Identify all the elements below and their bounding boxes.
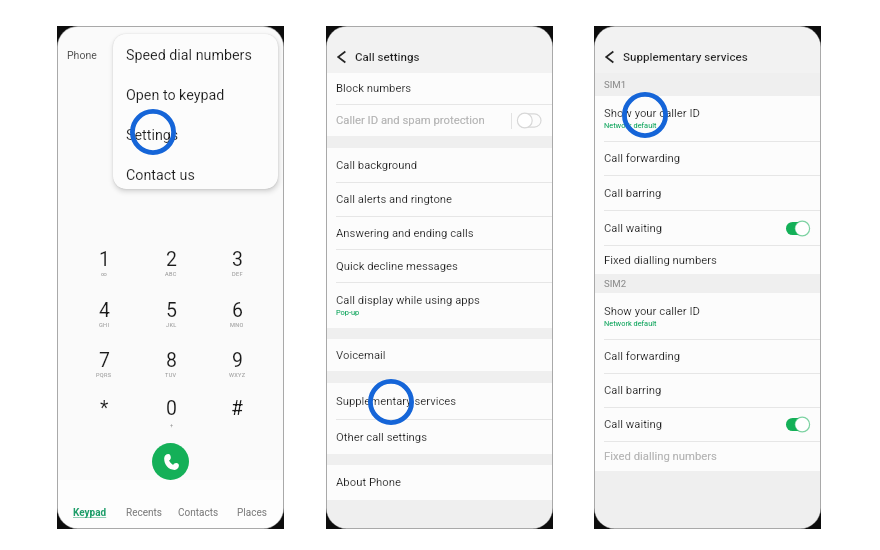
button[interactable]: Keypad <box>63 480 117 528</box>
staticText: 1 <box>99 248 110 271</box>
button[interactable]: Call alerts and ringtone <box>327 183 552 216</box>
button[interactable]: Speed dial numbers <box>113 43 278 68</box>
button[interactable]: Places <box>225 480 279 528</box>
button[interactable]: Call waiting <box>595 211 820 245</box>
staticText: Settings <box>126 127 179 144</box>
staticText: 2 <box>166 248 177 271</box>
staticText: Network default <box>604 319 657 328</box>
button[interactable]: Call barring <box>595 374 820 407</box>
staticText: Speed dial numbers <box>126 47 252 64</box>
staticText: WXYZ <box>229 372 246 379</box>
staticText: PQRS <box>96 372 112 379</box>
button[interactable]: Fixed dialling numbers <box>595 246 820 274</box>
button[interactable]: 8 <box>143 349 199 399</box>
button[interactable]: Show your caller ID <box>595 96 820 141</box>
staticText: Voicemail <box>336 349 386 362</box>
button[interactable]: Call barring <box>595 176 820 210</box>
button[interactable]: Show your caller ID <box>595 293 820 339</box>
staticText: * <box>100 397 109 420</box>
button[interactable]: Contact us <box>113 163 278 188</box>
button[interactable]: Block numbers <box>327 73 552 104</box>
staticText: Call settings <box>355 50 420 64</box>
staticText: JKL <box>166 322 177 329</box>
staticText: Call barring <box>604 384 662 397</box>
button[interactable]: 2 <box>143 248 199 298</box>
button[interactable]: Supplementary services <box>327 383 552 419</box>
button[interactable]: Voicemail <box>327 339 552 371</box>
button[interactable]: Call forwarding <box>595 142 820 175</box>
button[interactable]: Contacts <box>171 480 225 528</box>
staticText: Keypad <box>73 507 107 519</box>
button[interactable]: Call waiting <box>595 408 820 441</box>
staticText: Block numbers <box>336 82 412 95</box>
staticText: ∞ <box>101 271 108 278</box>
staticText: Supplementary services <box>623 50 748 64</box>
button[interactable]: # <box>209 397 265 447</box>
staticText: 3 <box>232 248 243 271</box>
staticText: Supplementary services <box>336 395 457 408</box>
staticText: Contacts <box>178 507 219 519</box>
button[interactable]: Caller ID and spam protection <box>327 105 552 136</box>
button[interactable]: 7 <box>76 349 132 399</box>
button[interactable]: Toggle <box>518 113 541 128</box>
staticText: Call waiting <box>604 418 663 431</box>
button[interactable]: Call display while using apps <box>327 283 552 328</box>
staticText: 7 <box>99 349 110 372</box>
button[interactable]: Back <box>334 49 350 65</box>
button[interactable]: Quick decline messages <box>327 250 552 282</box>
button[interactable]: Recents <box>117 480 171 528</box>
staticText: Call display while using apps <box>336 294 480 307</box>
staticText: Call waiting <box>604 222 663 235</box>
staticText: Answering and ending calls <box>336 227 474 240</box>
staticText: Phone <box>67 49 97 61</box>
staticText: Call forwarding <box>604 350 681 363</box>
button[interactable]: Answering and ending calls <box>327 217 552 249</box>
button[interactable]: 0 <box>143 397 199 447</box>
staticText: Show your caller ID <box>604 107 700 120</box>
staticText: Caller ID and spam protection <box>336 114 485 127</box>
button[interactable]: Settings <box>113 123 278 148</box>
staticText: 4 <box>99 299 110 322</box>
staticText: ABC <box>165 271 177 278</box>
button[interactable]: Toggle <box>786 417 809 432</box>
staticText: Call background <box>336 159 418 172</box>
button[interactable]: 1 <box>76 248 132 298</box>
staticText: MNO <box>230 322 244 329</box>
staticText: Quick decline messages <box>336 260 458 273</box>
button[interactable]: 6 <box>209 299 265 349</box>
button[interactable]: 4 <box>76 299 132 349</box>
staticText: Places <box>237 507 267 519</box>
staticText: 8 <box>166 349 177 372</box>
button[interactable]: Open to keypad <box>113 83 278 108</box>
staticText: Other call settings <box>336 431 428 444</box>
staticText: Fixed dialling numbers <box>604 254 717 267</box>
staticText: Recents <box>126 507 162 519</box>
button[interactable]: 3 <box>209 248 265 298</box>
button[interactable]: * <box>76 397 132 447</box>
staticText: + <box>170 422 174 429</box>
staticText: Network default <box>604 121 657 130</box>
button[interactable]: Call <box>152 443 189 480</box>
button[interactable]: Call background <box>327 148 552 182</box>
button[interactable]: Fixed dialling numbers <box>595 442 820 471</box>
staticText: 6 <box>232 299 243 322</box>
button[interactable]: 9 <box>209 349 265 399</box>
button[interactable]: Call forwarding <box>595 340 820 373</box>
staticText: 9 <box>232 349 243 372</box>
button[interactable]: Back <box>602 49 618 65</box>
staticText: 0 <box>166 397 177 420</box>
staticText: Contact us <box>126 167 195 184</box>
staticText: 5 <box>166 299 177 322</box>
button[interactable]: About Phone <box>327 465 552 500</box>
button[interactable]: Other call settings <box>327 420 552 454</box>
staticText: GHI <box>99 322 110 329</box>
staticText: DEF <box>232 271 243 278</box>
staticText: Call forwarding <box>604 152 681 165</box>
button[interactable]: Toggle <box>786 221 809 236</box>
staticText: Open to keypad <box>126 87 225 104</box>
staticText: Pop-up <box>336 308 360 317</box>
staticText: Fixed dialling numbers <box>604 450 717 463</box>
staticText: Call alerts and ringtone <box>336 193 453 206</box>
staticText: Show your caller ID <box>604 305 700 318</box>
button[interactable]: 5 <box>143 299 199 349</box>
